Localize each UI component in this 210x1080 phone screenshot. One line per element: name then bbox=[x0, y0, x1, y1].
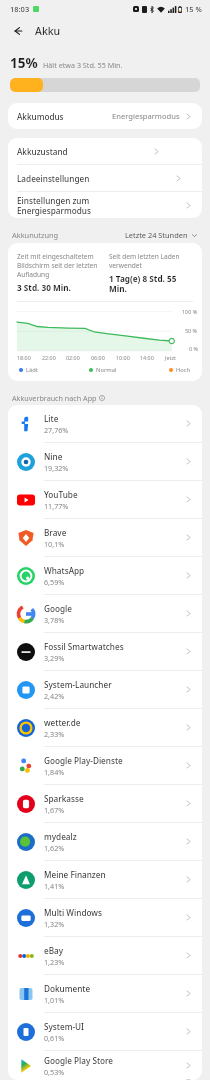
staticText: Lädt bbox=[26, 366, 38, 374]
button[interactable]: Zurück bbox=[9, 22, 27, 40]
staticText: 0,53% bbox=[44, 1067, 65, 1077]
staticText: 1,62% bbox=[44, 843, 65, 853]
button[interactable]: Google Play-Dienste bbox=[8, 747, 202, 784]
staticText: Zeit mit eingeschaltetem Bildschirm seit… bbox=[17, 252, 101, 279]
button[interactable]: Sparkasse bbox=[8, 785, 202, 822]
staticText: Akkuverbrauch nach App bbox=[12, 393, 97, 403]
staticText: Seit dem letzten Laden verwendet bbox=[109, 252, 193, 270]
staticText: Fossil Smartwatches bbox=[44, 641, 124, 652]
staticText: 14:00 bbox=[140, 354, 154, 361]
staticText: Letzte 24 Stunden bbox=[125, 230, 188, 240]
staticText: 15% bbox=[10, 54, 38, 72]
staticText: 100 % bbox=[182, 308, 198, 315]
staticText: 0 % bbox=[189, 345, 198, 352]
staticText: 1,41% bbox=[44, 881, 65, 891]
staticText: WhatsApp bbox=[44, 565, 85, 576]
staticText: Nine bbox=[44, 451, 63, 462]
button[interactable]: wetter.de bbox=[8, 709, 202, 746]
button[interactable]: Akkuzustand bbox=[8, 138, 202, 164]
staticText: Ladeeinstellungen bbox=[17, 173, 90, 184]
staticText: mydealz bbox=[44, 831, 77, 842]
staticText: Hoch bbox=[176, 366, 191, 374]
staticText: Meine Finanzen bbox=[44, 869, 106, 880]
staticText: 02:00 bbox=[66, 354, 80, 361]
staticText: wetter.de bbox=[44, 717, 81, 728]
staticText: 6,59% bbox=[44, 577, 65, 587]
staticText: Google Play-Dienste bbox=[44, 755, 123, 766]
staticText: Akkuzustand bbox=[17, 146, 68, 157]
button[interactable]: Brave bbox=[8, 519, 202, 556]
staticText: Jetzt bbox=[165, 354, 176, 361]
staticText: 3 Std. 30 Min. bbox=[17, 282, 71, 293]
staticText: 1,01% bbox=[44, 995, 65, 1005]
staticText: Akkumodus bbox=[17, 111, 64, 122]
staticText: 10:00 bbox=[116, 354, 130, 361]
staticText: System-Launcher bbox=[44, 679, 112, 690]
staticText: 0,61% bbox=[44, 1033, 65, 1043]
button[interactable]: Dokumente bbox=[8, 975, 202, 1012]
staticText: 2,33% bbox=[44, 729, 65, 739]
staticText: Brave bbox=[44, 527, 67, 538]
button[interactable]: Einstellungen zum Energiesparmodus bbox=[8, 192, 202, 218]
staticText: 2,42% bbox=[44, 691, 65, 701]
staticText: 27,76% bbox=[44, 425, 69, 435]
staticText: 10,1% bbox=[44, 539, 65, 549]
staticText: Google Play Store bbox=[44, 1055, 114, 1066]
button[interactable]: YouTube bbox=[8, 481, 202, 518]
button[interactable]: eBay bbox=[8, 937, 202, 974]
staticText: Hält etwa 3 Std. 55 Min. bbox=[43, 60, 123, 70]
button[interactable]: Google Play Store bbox=[8, 1051, 202, 1080]
button[interactable]: Ladeeinstellungen bbox=[8, 165, 202, 191]
staticText: Google bbox=[44, 603, 72, 614]
staticText: System-UI bbox=[44, 1021, 84, 1032]
staticText: 15 % bbox=[185, 4, 202, 14]
button[interactable]: Akkumodus bbox=[8, 103, 202, 129]
staticText: Normal bbox=[96, 366, 117, 374]
staticText: 1,32% bbox=[44, 919, 65, 929]
staticText: Lite bbox=[44, 413, 59, 424]
button[interactable]: Lite bbox=[8, 405, 202, 442]
button[interactable]: Google bbox=[8, 595, 202, 632]
staticText: 3,29% bbox=[44, 653, 65, 663]
button[interactable]: Meine Finanzen bbox=[8, 861, 202, 898]
button[interactable]: Letzte 24 Stunden bbox=[125, 230, 198, 240]
staticText: eBay bbox=[44, 945, 64, 956]
staticText: 06:00 bbox=[91, 354, 105, 361]
staticText: Akkunutzung bbox=[12, 230, 59, 240]
staticText: 1,84% bbox=[44, 767, 65, 777]
staticText: 3,78% bbox=[44, 615, 65, 625]
staticText: Akku bbox=[35, 24, 61, 38]
button[interactable]: WhatsApp bbox=[8, 557, 202, 594]
staticText: 19,32% bbox=[44, 463, 69, 473]
button[interactable]: Fossil Smartwatches bbox=[8, 633, 202, 670]
staticText: Einstellungen zum Energiesparmodus bbox=[17, 195, 100, 216]
staticText: Multi Windows bbox=[44, 907, 102, 918]
staticText: 11,77% bbox=[44, 501, 69, 511]
staticText: 22:00 bbox=[42, 354, 56, 361]
staticText: Sparkasse bbox=[44, 793, 84, 804]
button[interactable]: Multi Windows bbox=[8, 899, 202, 936]
staticText: 1,67% bbox=[44, 805, 65, 815]
button[interactable]: Nine bbox=[8, 443, 202, 480]
button[interactable]: System-Launcher bbox=[8, 671, 202, 708]
button[interactable]: System-UI bbox=[8, 1013, 202, 1050]
staticText: 18:00 bbox=[17, 354, 31, 361]
staticText: YouTube bbox=[44, 489, 78, 500]
staticText: 1 Tag(e) 8 Std. 55 Min. bbox=[109, 273, 193, 294]
staticText: Dokumente bbox=[44, 983, 91, 994]
button[interactable]: mydealz bbox=[8, 823, 202, 860]
staticText: 18:03 bbox=[10, 4, 30, 14]
staticText: 1,23% bbox=[44, 957, 65, 967]
staticText: Energiesparmodus bbox=[112, 111, 180, 121]
staticText: 50 % bbox=[185, 327, 198, 334]
